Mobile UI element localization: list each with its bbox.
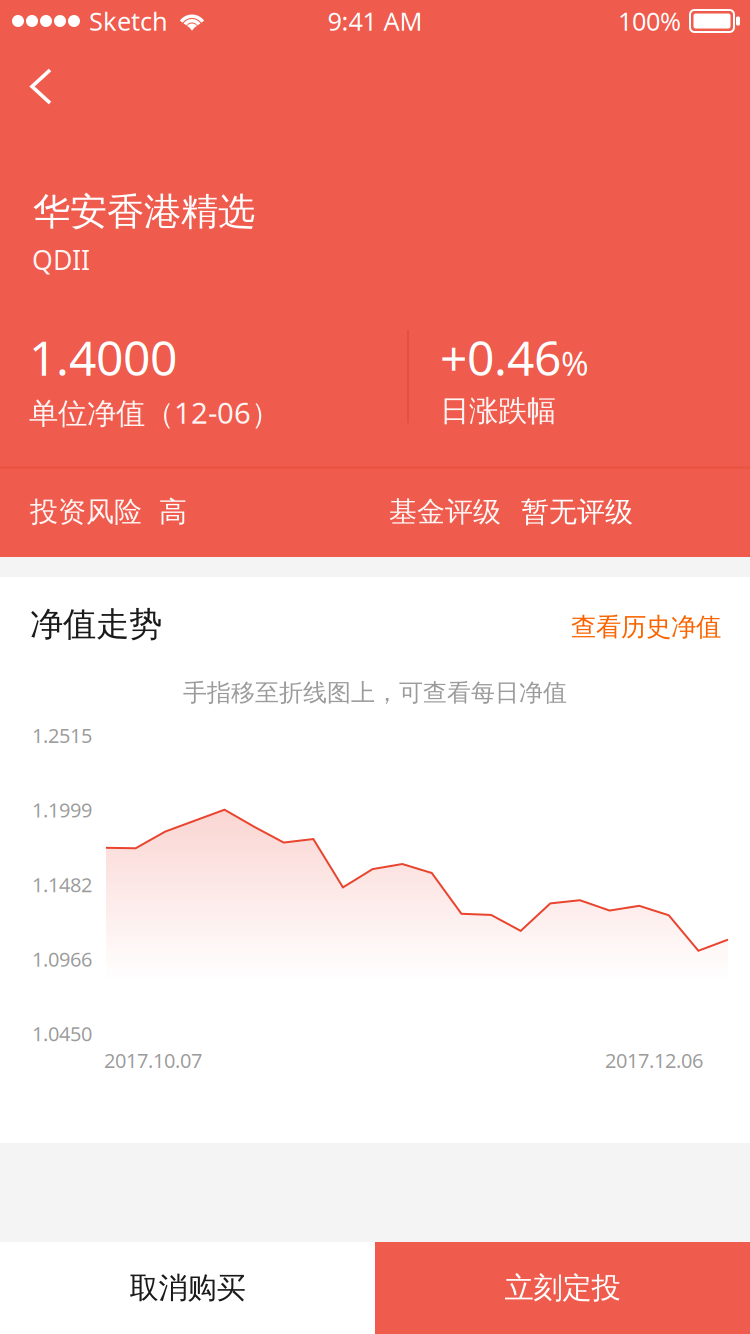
button[interactable]: Back (0, 42, 94, 125)
staticText: 日涨跌幅 (440, 393, 556, 429)
staticText: +0.46 (440, 325, 561, 389)
staticText: 投资风险 (30, 495, 142, 529)
staticText: QDII (32, 242, 90, 277)
staticText: 华安香港精选 (33, 189, 255, 235)
staticText: Sketch (89, 4, 168, 38)
staticText: 2017.12.06 (605, 1047, 703, 1074)
staticText: 1.1999 (32, 797, 92, 823)
staticText: 2017.10.07 (104, 1047, 202, 1074)
button[interactable]: 查看历史净值 (571, 612, 721, 643)
staticText: 1.4000 (29, 325, 177, 389)
button[interactable]: 立刻定投 (375, 1242, 750, 1334)
staticText: 1.2515 (32, 722, 92, 749)
staticText: 暂无评级 (521, 495, 633, 529)
staticText: 取消购买 (129, 1270, 245, 1306)
staticText: 9:41 AM (327, 4, 422, 38)
staticText: 手指移至折线图上，可查看每日净值 (183, 678, 567, 707)
staticText: 基金评级 (389, 495, 501, 529)
staticText: 1.0450 (32, 1020, 92, 1047)
staticText: 净值走势 (30, 604, 162, 645)
staticText: 100% (618, 4, 681, 38)
staticText: 1.1482 (32, 871, 92, 898)
staticText: 高 (159, 495, 187, 529)
staticText: 查看历史净值 (571, 612, 721, 643)
button[interactable]: 取消购买 (0, 1242, 375, 1334)
staticText: 立刻定投 (504, 1270, 620, 1306)
staticText: 1.0966 (32, 946, 92, 972)
staticText: % (561, 341, 589, 385)
staticText: 单位净值（12-06） (29, 393, 280, 432)
